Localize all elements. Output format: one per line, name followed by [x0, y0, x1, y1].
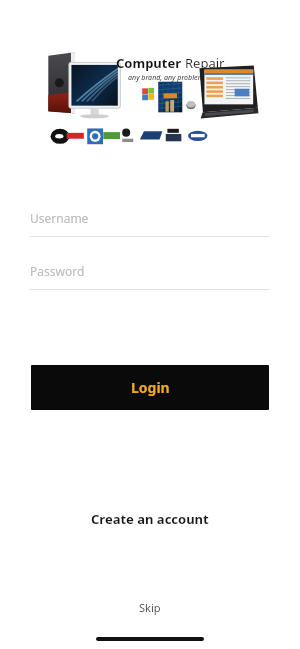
- staticText: Username: [30, 210, 89, 226]
- staticText: Computer: [116, 54, 182, 72]
- button[interactable]: Skip: [0, 600, 300, 615]
- button[interactable]: Create an account: [0, 510, 300, 528]
- button[interactable]: Username: [30, 205, 270, 237]
- staticText: Create an account: [91, 510, 209, 528]
- staticText: any brand, any problem: [128, 73, 204, 83]
- staticText: Login: [131, 378, 170, 397]
- button[interactable]: Password: [30, 258, 270, 290]
- staticText: Password: [30, 263, 85, 279]
- staticText: Skip: [139, 600, 161, 615]
- staticText: Repair: [185, 54, 225, 72]
- button[interactable]: Login: [31, 365, 269, 410]
